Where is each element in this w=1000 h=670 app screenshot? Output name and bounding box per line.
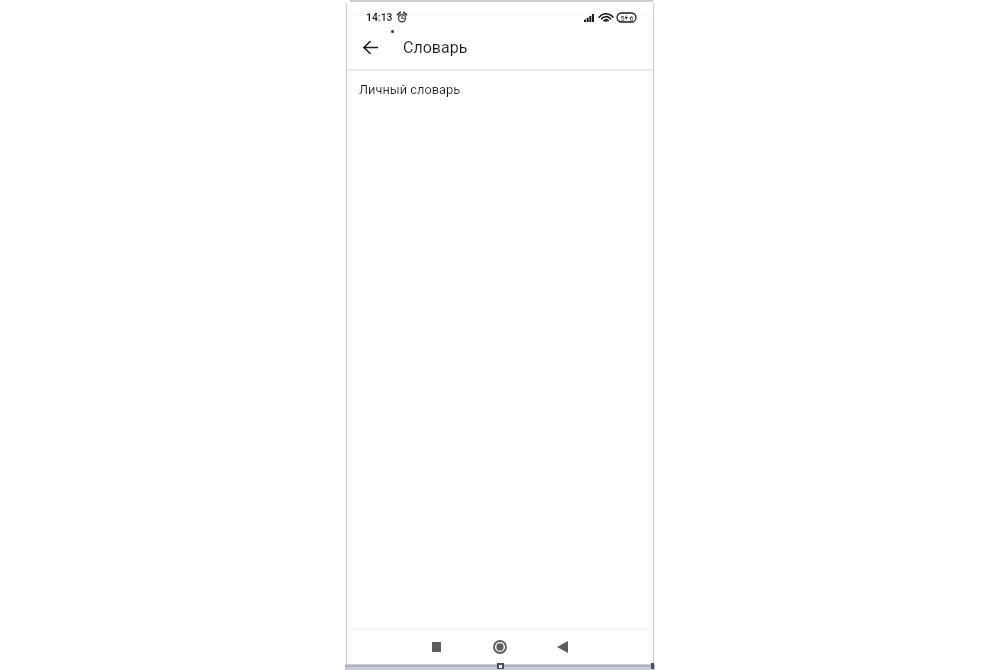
button[interactable]: Личный словарь	[347, 73, 653, 105]
staticText: 5	[620, 14, 625, 22]
staticText: 14:13	[366, 11, 393, 23]
button[interactable]: Back	[532, 629, 596, 664]
staticText: Личный словарь	[359, 82, 461, 97]
staticText: 6	[629, 14, 634, 22]
button[interactable]: Recents	[404, 629, 468, 664]
button[interactable]: Home	[468, 629, 532, 664]
staticText: Словарь	[403, 38, 468, 57]
button[interactable]: Back	[353, 30, 387, 64]
